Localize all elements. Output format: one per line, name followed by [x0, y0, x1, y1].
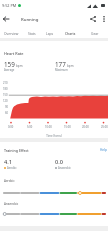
button[interactable]: Stats: [23, 26, 41, 39]
staticText: 60: [5, 111, 8, 115]
button[interactable]: [0, 212, 108, 216]
staticText: 120: [3, 99, 8, 103]
staticText: 15:00: [64, 125, 71, 129]
staticText: Anaerobic: [58, 166, 71, 170]
staticText: 20:00: [82, 125, 89, 129]
staticText: Anaerobic: [4, 202, 19, 206]
staticText: Time (h:m:s): [0, 134, 108, 138]
staticText: Help: [100, 148, 107, 152]
staticText: 0.0: [55, 158, 63, 166]
button[interactable]: [0, 191, 108, 195]
button[interactable]: Help: [100, 148, 107, 152]
staticText: Aerobic: [7, 166, 17, 170]
staticText: 159: [4, 60, 15, 69]
button[interactable]: Back: [0, 11, 11, 26]
staticText: 25:00: [101, 125, 108, 129]
staticText: 9:52 PM: [2, 3, 17, 8]
staticText: 90: [5, 105, 8, 109]
staticText: 150: [3, 93, 8, 97]
staticText: Average: [4, 68, 15, 72]
button[interactable]: More options: [99, 11, 108, 26]
staticText: Overview: [4, 31, 19, 35]
staticText: 0:00: [8, 125, 14, 129]
staticText: 10:00: [45, 125, 52, 129]
staticText: 5:00: [27, 125, 33, 129]
staticText: 180: [3, 87, 8, 91]
staticText: 210: [3, 81, 8, 85]
button[interactable]: Overview: [0, 26, 23, 39]
staticText: Maximum: [55, 68, 68, 72]
staticText: Stats: [28, 31, 36, 35]
staticText: Running: [21, 16, 39, 22]
staticText: Heart Rate: [4, 51, 24, 56]
staticText: Laps: [46, 31, 54, 35]
staticText: 177: [55, 60, 66, 69]
staticText: Charts: [65, 31, 76, 35]
staticText: 4.1: [4, 158, 12, 166]
button[interactable]: Laps: [41, 26, 59, 39]
button[interactable]: Charts: [59, 26, 82, 39]
button[interactable]: Gear: [82, 26, 108, 39]
staticText: bpm: [67, 64, 74, 68]
staticText: Gear: [91, 31, 99, 35]
button[interactable]: Share: [87, 11, 99, 26]
staticText: Aerobic: [4, 179, 15, 183]
staticText: bpm: [16, 64, 23, 68]
staticText: Training Effect: [4, 148, 29, 153]
